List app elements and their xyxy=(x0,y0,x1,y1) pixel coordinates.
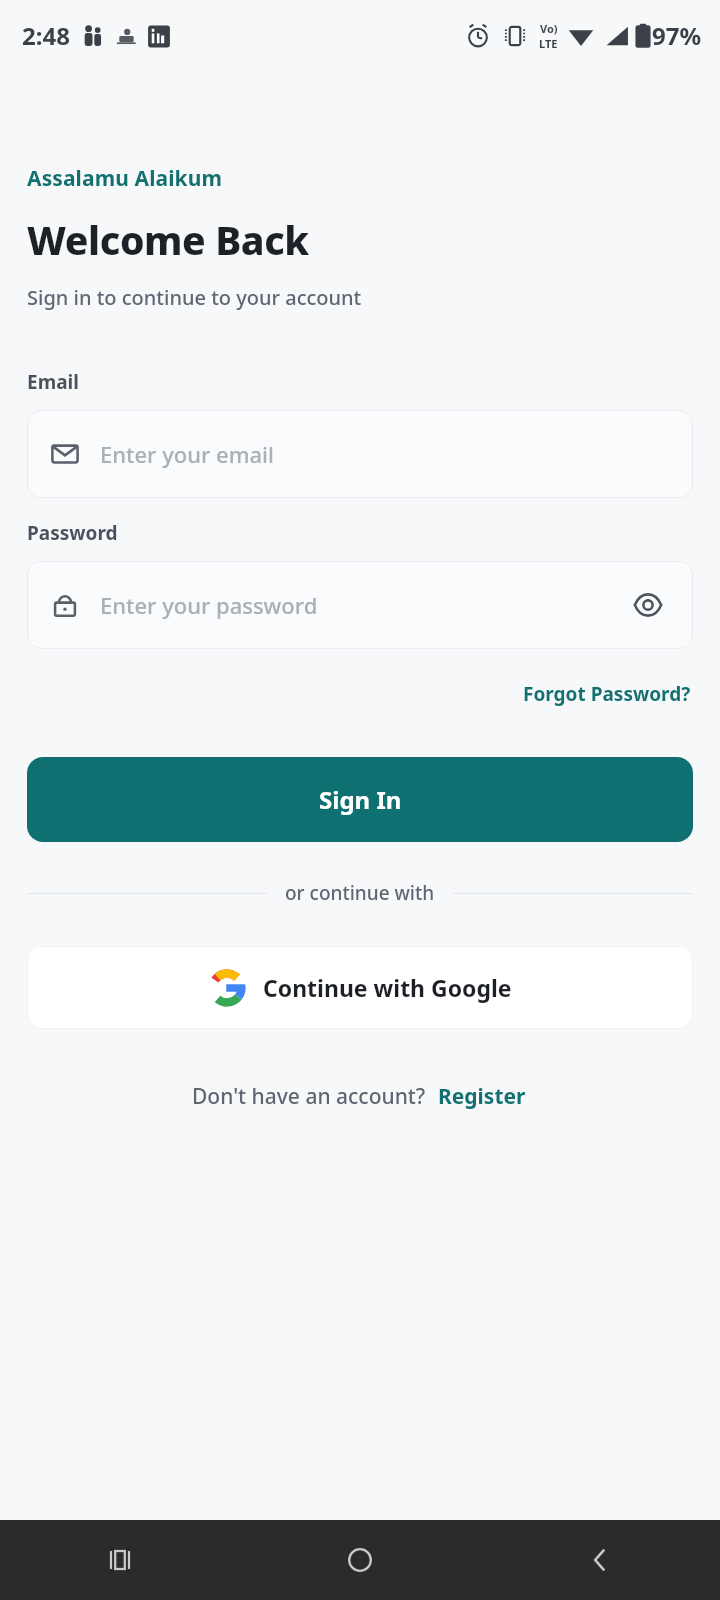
staticText: Forgot Password? xyxy=(523,681,691,707)
button[interactable]: Home xyxy=(240,1520,480,1600)
button[interactable]: Enter your email xyxy=(27,410,693,498)
staticText: Password xyxy=(27,520,118,546)
button[interactable]: Forgot Password? xyxy=(521,677,693,711)
staticText: 2:48 xyxy=(22,19,70,52)
staticText: Vo) xyxy=(540,21,558,36)
staticText: Sign In xyxy=(319,783,402,816)
button[interactable]: Back xyxy=(480,1520,720,1600)
staticText: Assalamu Alaikum xyxy=(27,164,223,193)
button[interactable]: Continue with Google xyxy=(27,946,693,1029)
staticText: Register xyxy=(438,1082,526,1111)
staticText: or continue with xyxy=(285,880,435,906)
staticText: Don't have an account? xyxy=(192,1082,426,1111)
staticText: Sign in to continue to your account xyxy=(27,284,362,311)
staticText: Welcome Back xyxy=(27,213,309,266)
button[interactable]: Register xyxy=(436,1079,528,1114)
staticText: Email xyxy=(27,369,79,395)
button[interactable]: Show password xyxy=(626,583,670,627)
button[interactable]: Enter your password xyxy=(27,561,693,649)
staticText: LTE xyxy=(539,36,558,51)
staticText: Continue with Google xyxy=(263,972,512,1003)
staticText: Enter your password xyxy=(100,590,626,620)
button[interactable]: Sign In xyxy=(27,757,693,842)
staticText: 97% xyxy=(652,19,702,52)
button[interactable]: Recent apps xyxy=(0,1520,240,1600)
staticText: Enter your email xyxy=(100,439,670,469)
